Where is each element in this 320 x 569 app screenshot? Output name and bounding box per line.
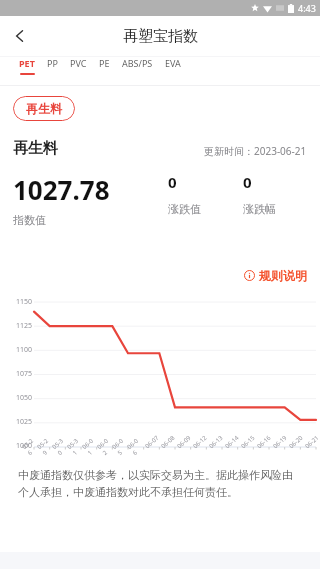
staticText: 更新时间：2023-06-21	[204, 144, 307, 158]
button[interactable]: 规则说明	[236, 265, 320, 286]
staticText: 05-30	[51, 435, 72, 457]
staticText: 06-05	[111, 435, 132, 457]
staticText: 05-26	[21, 435, 42, 457]
staticText: 06-07	[143, 434, 161, 450]
staticText: EVA	[165, 57, 181, 69]
staticText: 1027.78	[13, 172, 110, 207]
staticText: 规则说明	[259, 268, 307, 283]
staticText: 06-16	[255, 434, 273, 450]
button[interactable]: PP	[41, 57, 64, 73]
staticText: 1075	[4, 369, 32, 379]
staticText: 1150	[4, 297, 32, 307]
staticText: 再生料	[26, 101, 62, 116]
button[interactable]: 再生料	[13, 96, 75, 121]
staticText: 中废通指数仅供参考，以实际交易为主。据此操作风险由个人承担，中废通指数对此不承担…	[18, 468, 302, 499]
staticText: PE	[99, 57, 110, 69]
staticText: 06-01	[81, 435, 102, 457]
staticText: 涨跌值	[168, 202, 201, 216]
staticText: PVC	[70, 57, 87, 69]
staticText: 06-19	[271, 434, 289, 450]
button[interactable]: PET	[13, 57, 41, 75]
staticText: 指数值	[13, 213, 46, 227]
button[interactable]: Back	[0, 16, 40, 56]
staticText: 06-21	[303, 434, 320, 450]
staticText: 1050	[4, 393, 32, 403]
staticText: PP	[47, 57, 58, 69]
button[interactable]: PVC	[64, 57, 93, 73]
staticText: 4:43	[298, 2, 316, 14]
staticText: 再生料	[13, 139, 58, 158]
staticText: PET	[19, 57, 35, 69]
staticText: 06-08	[159, 434, 177, 450]
staticText: 1100	[4, 345, 32, 355]
staticText: 06-02	[96, 435, 117, 457]
staticText: 涨跌幅	[243, 202, 276, 216]
button[interactable]: PE	[93, 57, 116, 73]
staticText: 0	[168, 172, 177, 192]
staticText: 06-09	[175, 434, 193, 450]
staticText: 1125	[4, 321, 32, 331]
staticText: 06-12	[191, 434, 209, 450]
staticText: 再塑宝指数	[123, 27, 198, 46]
button[interactable]: EVA	[159, 57, 187, 73]
staticText: 06-14	[223, 434, 241, 450]
staticText: 06-13	[207, 434, 225, 450]
staticText: 0	[243, 172, 252, 192]
button[interactable]: ABS/PS	[116, 57, 159, 73]
staticText: 1025	[4, 417, 32, 427]
staticText: 1000	[4, 441, 32, 451]
staticText: 06-06	[126, 435, 147, 457]
staticText: 06-15	[239, 434, 257, 450]
staticText: 05-29	[36, 435, 57, 457]
staticText: 05-31	[66, 435, 87, 457]
staticText: ABS/PS	[122, 57, 153, 69]
staticText: 06-20	[287, 434, 305, 450]
